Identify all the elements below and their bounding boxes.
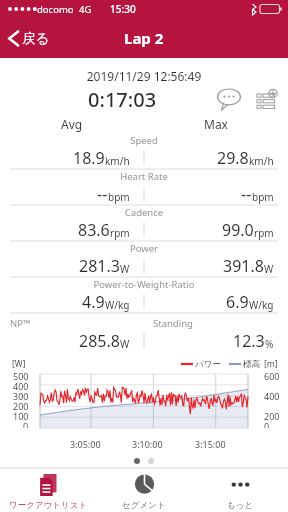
staticText: 4G	[79, 3, 92, 16]
staticText: 281.3	[79, 255, 120, 277]
staticText: W/kg	[105, 298, 130, 312]
staticText: 18.9	[73, 147, 105, 169]
staticText: セグメント	[122, 500, 166, 511]
button[interactable]: ワークアウトリスト	[0, 469, 96, 512]
staticText: docomo	[37, 3, 74, 16]
staticText: 400	[264, 390, 280, 400]
staticText: [W]	[12, 358, 26, 370]
staticText: 100	[13, 410, 29, 420]
staticText: Heart Rate	[0, 170, 288, 183]
staticText: 29.8	[217, 147, 249, 169]
staticText: W	[120, 262, 130, 276]
staticText: W	[264, 262, 274, 276]
staticText: 0	[264, 420, 270, 428]
staticText: 0	[23, 420, 29, 428]
staticText: bpm	[252, 190, 274, 204]
staticText: Cadence	[0, 206, 288, 219]
staticText: Power-to-Weight-Ratio	[0, 278, 288, 291]
staticText: 2019/11/29 12:56:49	[0, 68, 288, 84]
staticText: bpm	[108, 190, 130, 204]
staticText: 285.8	[79, 330, 120, 352]
staticText: 6.9	[226, 291, 249, 313]
staticText: 15:30	[110, 2, 136, 16]
button[interactable]: Comments	[216, 88, 242, 110]
staticText: 0:17:03	[88, 86, 157, 112]
staticText: パワー	[195, 359, 221, 370]
staticText: Speed	[0, 134, 288, 147]
staticText: 4.9	[82, 291, 105, 313]
staticText: Standing	[153, 317, 193, 330]
staticText: 400	[13, 380, 29, 390]
button[interactable]: セグメント	[96, 469, 192, 512]
staticText: km/h	[249, 154, 274, 168]
staticText: 標高	[243, 359, 260, 370]
staticText: 99.0	[222, 219, 254, 241]
staticText: --	[241, 183, 252, 205]
staticText: Lap 2	[124, 28, 164, 48]
staticText: ワークアウトリスト	[9, 500, 88, 511]
staticText: NP™	[10, 317, 31, 330]
button[interactable]: もっと	[192, 469, 288, 512]
staticText: Power	[0, 242, 288, 255]
staticText: [m]	[264, 358, 278, 370]
staticText: 600	[264, 370, 280, 380]
staticText: 200	[13, 400, 29, 410]
staticText: W	[120, 337, 130, 351]
staticText: 83.6	[78, 219, 110, 241]
staticText: W/kg	[249, 298, 274, 312]
staticText: rpm	[110, 226, 130, 240]
staticText: Avg	[61, 116, 83, 132]
staticText: --	[97, 183, 108, 205]
staticText: 391.8	[223, 255, 264, 277]
staticText: 3:10:00	[132, 438, 163, 450]
staticText: 戻る	[22, 30, 50, 47]
staticText: 3:05:00	[70, 438, 101, 450]
button[interactable]: Add data field	[256, 89, 278, 109]
staticText: 12.3	[233, 330, 265, 352]
staticText: 200	[264, 410, 280, 420]
staticText: もっと	[227, 500, 254, 511]
staticText: Max	[204, 116, 228, 132]
staticText: %	[265, 337, 274, 351]
button[interactable]: 戻る	[0, 24, 60, 53]
staticText: rpm	[254, 226, 274, 240]
staticText: km/h	[105, 154, 130, 168]
staticText: 500	[13, 370, 29, 380]
staticText: 300	[13, 390, 29, 400]
staticText: 3:15:00	[195, 438, 226, 450]
